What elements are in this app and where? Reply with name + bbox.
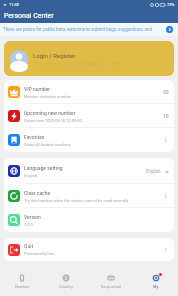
staticText: 10 — [163, 113, 169, 119]
staticText: Try this function when the system cannot… — [24, 198, 129, 203]
button[interactable]: Version — [4, 208, 174, 232]
staticText: English — [146, 169, 161, 174]
button[interactable]: My — [133, 266, 178, 296]
staticText: Country — [59, 284, 73, 289]
staticText: Member exclusive number — [24, 94, 71, 99]
staticText: Quit — [24, 243, 34, 249]
staticText: Clear cache — [24, 190, 51, 196]
button[interactable]: There are prizes for public beta, welcom… — [0, 23, 178, 36]
staticText: Online time 2022-06-10 22:00:00 — [24, 118, 82, 123]
staticText: VIP number — [24, 86, 50, 92]
staticText: There are prizes for public beta, welcom… — [3, 27, 163, 32]
staticText: Query all favorite numbers — [24, 142, 71, 147]
button[interactable]: Temp email — [88, 266, 133, 296]
staticText: Number — [15, 284, 30, 289]
button[interactable]: Clear cache — [4, 184, 174, 208]
staticText: Upcoming new number — [24, 110, 76, 116]
staticText: 73% — [167, 2, 175, 7]
button[interactable]: Quit — [4, 238, 174, 261]
staticText: Temp email — [100, 284, 121, 289]
staticText: 11:50 — [9, 2, 19, 7]
button[interactable]: Favorites — [4, 128, 174, 152]
staticText: Personal Center — [4, 12, 54, 20]
button[interactable]: Open announcement — [166, 26, 173, 33]
staticText: Login / Register — [33, 52, 76, 59]
staticText: Permanently free — [24, 251, 55, 256]
staticText: 30 — [163, 89, 169, 95]
staticText: Language setting — [24, 165, 63, 171]
button[interactable]: Language setting — [4, 158, 174, 184]
button[interactable]: Number — [0, 266, 44, 296]
staticText: Favorites — [24, 134, 45, 140]
button[interactable]: Country — [44, 266, 88, 296]
button[interactable]: Upcoming new number — [4, 104, 174, 128]
button[interactable]: VIP number — [4, 80, 174, 104]
staticText: Version — [24, 214, 41, 220]
staticText: Unlock more functions after logging in a… — [33, 61, 126, 66]
staticText: My — [153, 284, 159, 289]
button[interactable]: Login / Register — [4, 41, 174, 76]
staticText: 1.0.0 — [24, 222, 33, 227]
staticText: English — [24, 173, 37, 178]
